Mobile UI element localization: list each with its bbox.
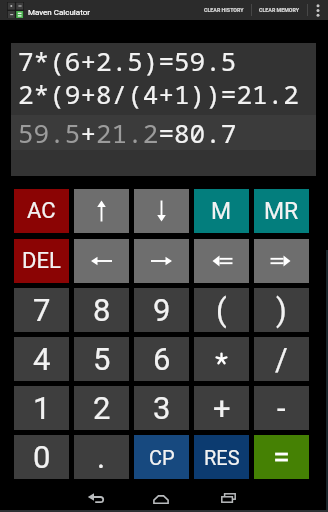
button[interactable]: 9 [134,288,189,332]
staticText: 0 [33,439,51,475]
button[interactable]: CLEAR HISTORY [197,0,251,20]
button[interactable]: CP [134,435,189,479]
button[interactable]: 7 [14,288,69,332]
staticText: CLEAR HISTORY [204,7,244,13]
button[interactable]: AC [14,189,69,233]
staticText: 9 [153,292,171,328]
button[interactable] [194,337,249,381]
button[interactable] [308,0,328,20]
button[interactable]: + [194,386,249,430]
staticText: + [213,390,231,426]
staticText: 6 [153,341,171,377]
button[interactable]: ) [254,288,309,332]
staticText: RES [204,446,240,469]
button[interactable]: M [194,189,249,233]
button[interactable] [254,239,309,283]
button[interactable]: / [254,337,309,381]
button[interactable]: DEL [14,239,69,283]
staticText: ) [276,292,287,328]
button[interactable]: CLEAR MEMORY [252,0,307,20]
staticText: AC [27,198,56,224]
staticText: M [211,198,232,225]
button[interactable] [66,486,126,512]
button[interactable] [194,239,249,283]
staticText: . [97,439,106,475]
staticText: 2*(9+8/(4+1))=21.2 [18,76,299,109]
staticText: 5 [93,341,111,377]
staticText: - [277,390,286,426]
staticText: 7 [33,292,51,328]
button[interactable] [134,239,189,283]
button[interactable] [198,486,258,512]
staticText: CLEAR MEMORY [259,7,300,13]
button[interactable]: 4 [14,337,69,381]
staticText: 3 [153,390,171,426]
button[interactable]: 8 [74,288,129,332]
staticText: 7*(6+2.5)=59.5 [18,43,237,76]
button[interactable]: RES [194,435,249,479]
staticText: / [275,341,288,377]
button[interactable]: - [254,386,309,430]
staticText: 1 [33,390,51,426]
button[interactable] [131,486,191,512]
staticText: 59.5+21.2=80.7 [18,115,237,150]
button[interactable]: . [74,435,129,479]
staticText: ( [216,292,227,328]
button[interactable]: 5 [74,337,129,381]
staticText: 8 [93,292,111,328]
button[interactable]: 6 [134,337,189,381]
staticText: 4 [33,341,51,377]
button[interactable] [74,189,129,233]
button[interactable]: 1 [14,386,69,430]
button[interactable]: MR [254,189,309,233]
button[interactable] [74,239,129,283]
staticText: DEL [22,248,61,274]
staticText: 2 [93,390,111,426]
button[interactable]: 2 [74,386,129,430]
button[interactable]: 3 [134,386,189,430]
staticText: CP [149,446,175,469]
button[interactable] [254,435,309,479]
button[interactable] [134,189,189,233]
staticText: Maven Calculator [28,8,90,17]
staticText: MR [264,198,299,225]
button[interactable]: ( [194,288,249,332]
button[interactable]: 0 [14,435,69,479]
